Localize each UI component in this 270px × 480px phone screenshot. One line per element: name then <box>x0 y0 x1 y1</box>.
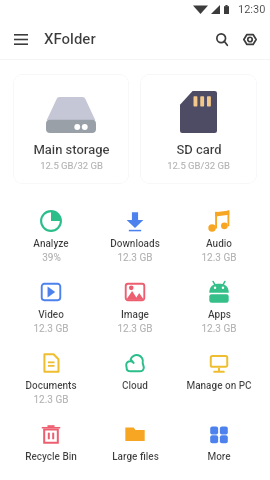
button[interactable]: SD card <box>140 74 257 184</box>
staticText: Recycle Bin <box>25 451 77 463</box>
staticText: Manage on PC <box>186 380 252 392</box>
staticText: Image <box>121 309 149 321</box>
button[interactable]: Image <box>93 279 177 350</box>
staticText: Analyze <box>33 238 69 250</box>
button[interactable]: More <box>177 421 261 480</box>
button[interactable]: Menu <box>0 18 42 60</box>
button[interactable]: Analyze <box>9 208 93 279</box>
button[interactable]: Documents <box>9 350 93 421</box>
staticText: 39% <box>42 252 61 264</box>
staticText: XFolder <box>44 30 96 48</box>
button[interactable]: Manage on PC <box>177 350 261 421</box>
staticText: 12.5 GB/32 GB <box>167 160 230 171</box>
staticText: Downloads <box>110 238 160 250</box>
button[interactable]: Large files <box>93 421 177 480</box>
button[interactable]: Main storage <box>13 74 129 184</box>
button[interactable]: Apps <box>177 279 261 350</box>
staticText: Apps <box>208 309 231 321</box>
button[interactable]: Cloud <box>93 350 177 421</box>
staticText: 12.3 GB <box>33 323 69 335</box>
staticText: 12.3 GB <box>33 394 69 406</box>
button[interactable]: Downloads <box>93 208 177 279</box>
button[interactable]: Recycle Bin <box>9 421 93 480</box>
staticText: 12.5 GB/32 GB <box>40 160 103 171</box>
button[interactable]: Search <box>210 18 234 60</box>
staticText: Audio <box>206 238 232 250</box>
staticText: 12.3 GB <box>117 252 153 264</box>
staticText: Video <box>38 309 64 321</box>
staticText: Large files <box>112 451 159 463</box>
staticText: SD card <box>176 142 222 157</box>
button[interactable]: Settings <box>234 18 265 60</box>
staticText: Main storage <box>33 142 110 157</box>
button[interactable]: Video <box>9 279 93 350</box>
staticText: 12.3 GB <box>201 252 237 264</box>
staticText: Cloud <box>122 380 148 392</box>
staticText: Documents <box>25 380 77 392</box>
staticText: More <box>207 451 231 463</box>
staticText: 12.3 GB <box>201 323 237 335</box>
button[interactable]: Audio <box>177 208 261 279</box>
staticText: 12.3 GB <box>117 323 153 335</box>
staticText: 12:30 <box>238 3 266 16</box>
